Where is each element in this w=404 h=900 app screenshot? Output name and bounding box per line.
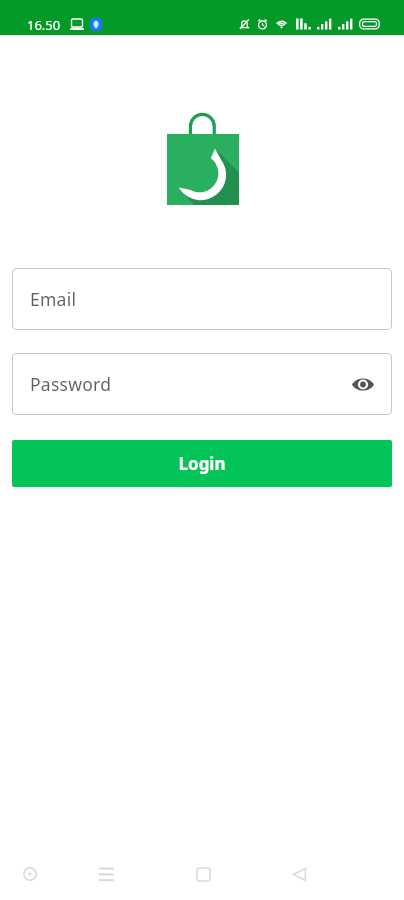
button[interactable]: Password: [12, 353, 392, 415]
button[interactable]: Assistant: [7, 848, 52, 900]
button[interactable]: Home: [175, 848, 231, 900]
button[interactable]: Back: [271, 848, 327, 900]
staticText: Email: [30, 287, 77, 311]
staticText: Login: [178, 452, 226, 475]
staticText: Password: [30, 372, 112, 396]
button[interactable]: Show password: [350, 371, 376, 397]
staticText: 16.50: [27, 16, 61, 34]
button[interactable]: Menu: [78, 848, 134, 900]
button[interactable]: Email: [12, 268, 392, 330]
button[interactable]: Login: [12, 440, 392, 487]
